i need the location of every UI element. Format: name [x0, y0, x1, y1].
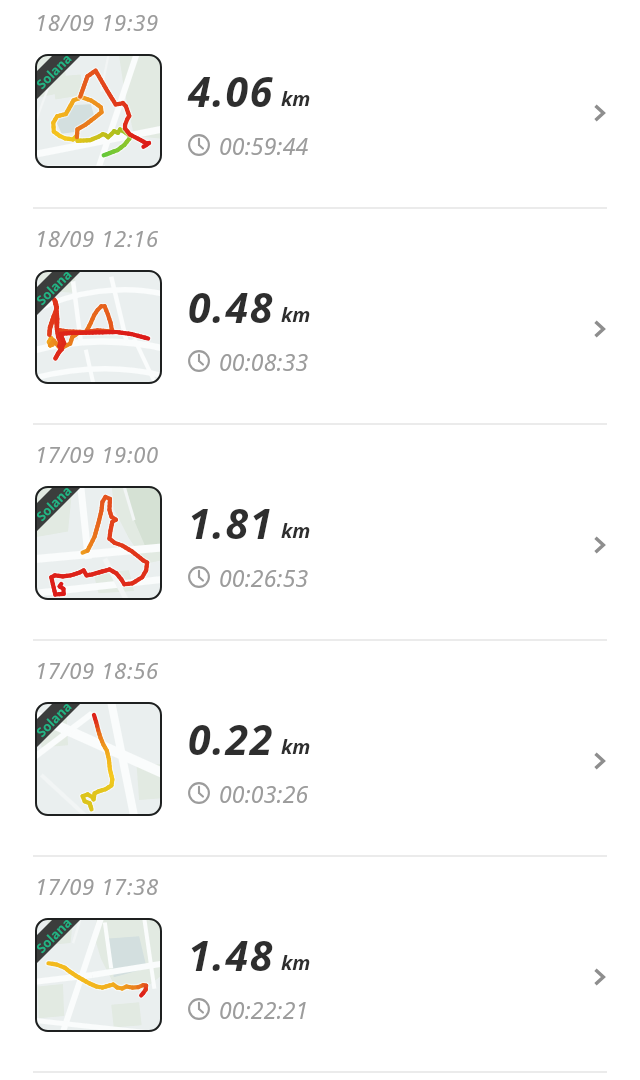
button[interactable]: Open activity details [575, 953, 623, 1001]
staticText: Solana [35, 702, 76, 741]
staticText: km [281, 949, 311, 976]
staticText: 0.22 [188, 711, 274, 767]
button[interactable]: Open activity details [575, 521, 623, 569]
staticText: 00:08:33 [219, 346, 309, 377]
button[interactable]: Activity 18/09 19:39, 4.06 kilometres, 0… [0, 0, 640, 216]
button[interactable]: Activity 17/09 17:38, 1.48 kilometres, 0… [0, 864, 640, 1080]
button[interactable]: Open activity details [575, 305, 623, 353]
button[interactable]: Activity 17/09 19:00, 1.81 kilometres, 0… [0, 432, 640, 648]
staticText: 00:26:53 [219, 562, 309, 593]
staticText: 1.81 [188, 495, 274, 551]
staticText: km [281, 301, 311, 328]
button[interactable]: Activity 17/09 18:56, 0.22 kilometres, 0… [0, 648, 640, 864]
staticText: Solana [35, 54, 76, 93]
staticText: km [281, 517, 311, 544]
staticText: Solana [35, 918, 76, 957]
button[interactable]: Activity 18/09 12:16, 0.48 kilometres, 0… [0, 216, 640, 432]
staticText: km [281, 733, 311, 760]
button[interactable]: Open activity details [575, 737, 623, 785]
staticText: Solana [35, 270, 76, 309]
staticText: 4.06 [188, 63, 274, 119]
staticText: 17/09 18:56 [35, 655, 159, 685]
staticText: 17/09 19:00 [35, 439, 159, 469]
button[interactable]: Open activity details [575, 89, 623, 137]
staticText: km [281, 85, 311, 112]
staticText: 18/09 19:39 [35, 7, 159, 37]
staticText: 00:59:44 [219, 130, 309, 161]
staticText: 00:22:21 [219, 994, 309, 1025]
staticText: Solana [35, 486, 76, 525]
staticText: 1.48 [188, 927, 274, 983]
staticText: 17/09 17:38 [35, 871, 159, 901]
staticText: 00:03:26 [219, 778, 309, 809]
staticText: 18/09 12:16 [35, 223, 159, 253]
staticText: 0.48 [188, 279, 274, 335]
